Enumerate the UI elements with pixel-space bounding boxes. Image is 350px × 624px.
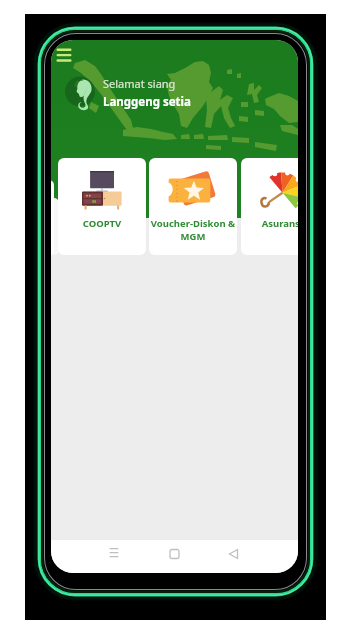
staticText: COOPTV [58,217,146,230]
button[interactable]: Open navigation menu [54,45,76,67]
button[interactable]: Asuransi J [241,158,298,255]
button[interactable]: COOPTV [58,158,146,255]
staticText: Asuransi J [241,217,298,230]
staticText: Langgeng setia [103,94,191,110]
button[interactable]: Voucher-Diskon & MGM [149,158,237,255]
staticText: Voucher-Diskon & MGM [149,217,237,242]
staticText: Selamat siang [103,76,176,91]
